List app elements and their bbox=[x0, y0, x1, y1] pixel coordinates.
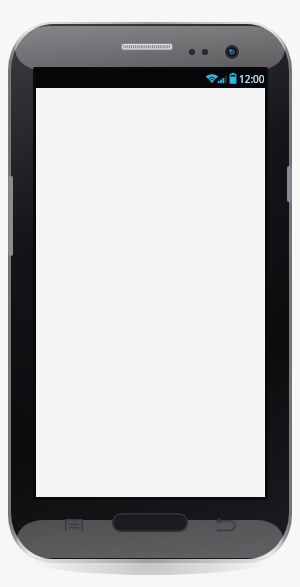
button[interactable]: Menu bbox=[60, 514, 88, 536]
staticText: 12:00 bbox=[239, 72, 265, 86]
button[interactable]: Back bbox=[212, 514, 240, 536]
button[interactable]: Home bbox=[112, 512, 188, 533]
